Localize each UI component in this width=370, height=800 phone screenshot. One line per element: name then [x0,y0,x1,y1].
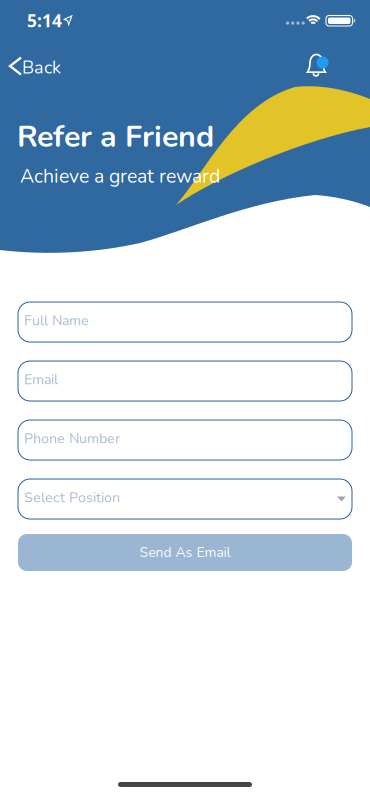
staticText: 5:14 [27,9,62,32]
button[interactable]: Email [18,361,352,401]
button[interactable]: Select Position [18,479,352,519]
staticText: Full Name [24,311,89,330]
button[interactable]: Back [10,52,61,80]
staticText: Select Position [24,488,120,507]
staticText: Achieve a great reward [20,163,220,190]
staticText: Send As Email [139,543,230,562]
staticText: Phone Number [24,429,120,448]
button[interactable]: Notifications [307,54,326,77]
button[interactable]: Send As Email [18,534,352,571]
staticText: Refer a Friend [17,116,214,157]
staticText: Email [24,370,58,389]
button[interactable]: Full Name [18,302,352,342]
staticText: Back [22,55,61,80]
button[interactable]: Phone Number [18,420,352,460]
